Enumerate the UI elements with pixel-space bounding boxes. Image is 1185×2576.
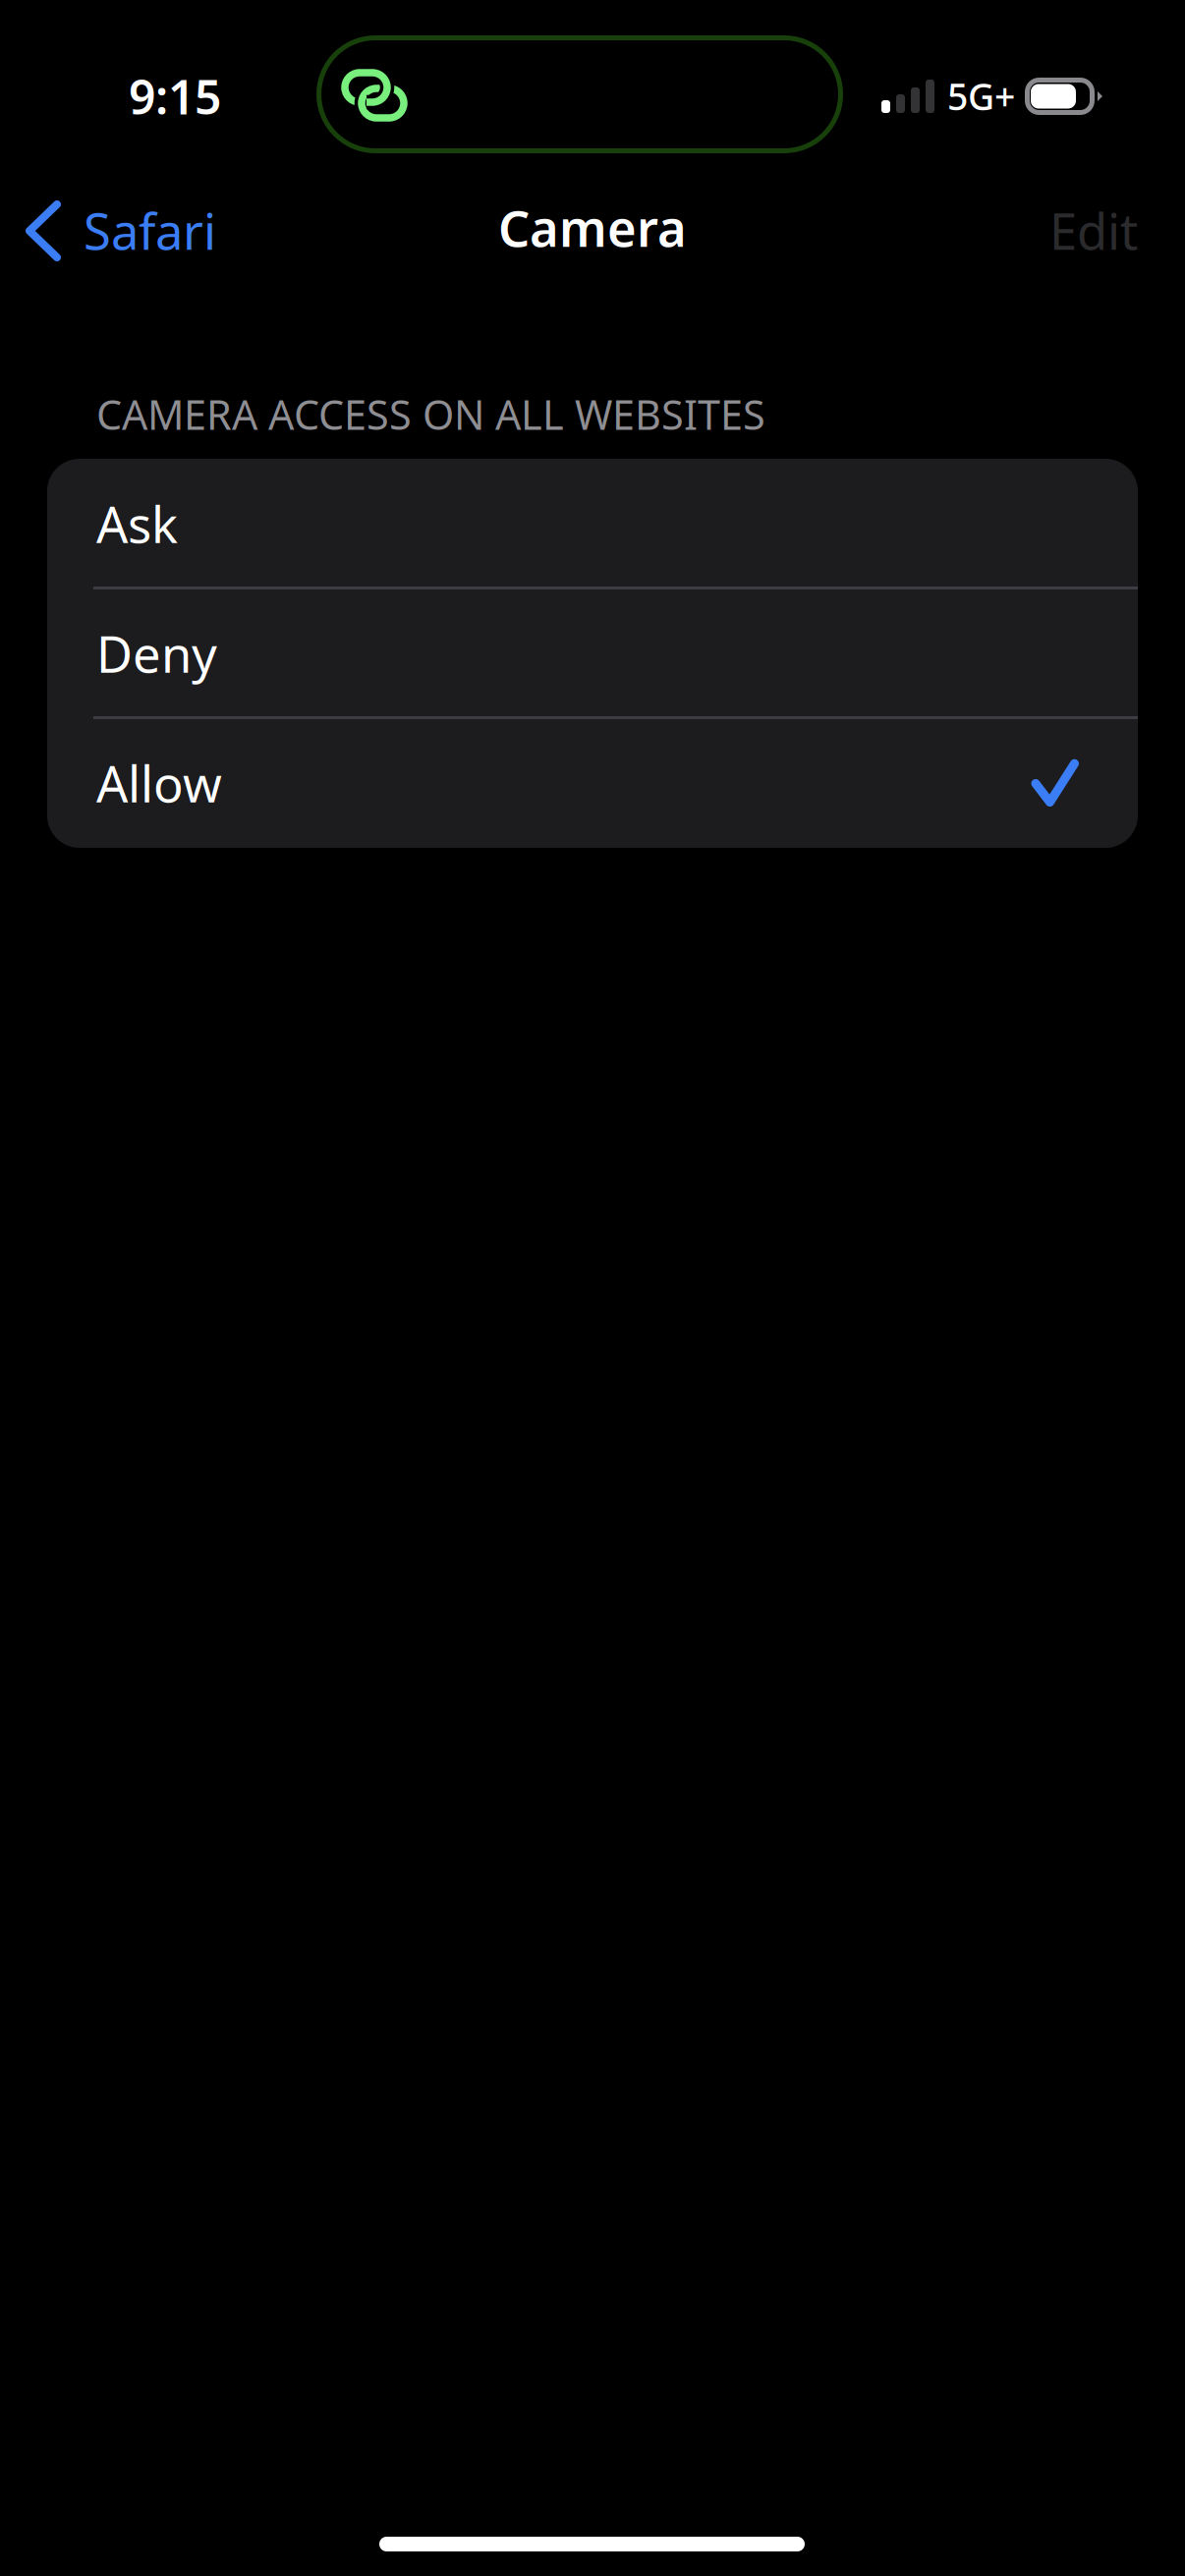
button[interactable]: Back to Safari xyxy=(0,183,255,291)
staticText: Edit xyxy=(1049,197,1138,264)
button[interactable]: Deny xyxy=(47,588,1138,718)
button[interactable]: Allow xyxy=(47,718,1138,848)
staticText: 5G+ xyxy=(947,72,1015,120)
staticText: Deny xyxy=(96,620,217,686)
staticText: 9:15 xyxy=(129,65,221,127)
staticText: Ask xyxy=(96,491,178,557)
staticText: Allow xyxy=(96,750,222,816)
staticText: Camera xyxy=(498,195,687,261)
staticText: CAMERA ACCESS ON ALL WEBSITES xyxy=(96,387,765,441)
button[interactable]: Ask xyxy=(47,459,1138,588)
staticText: Safari xyxy=(84,197,216,264)
button[interactable]: Edit xyxy=(1008,183,1185,291)
